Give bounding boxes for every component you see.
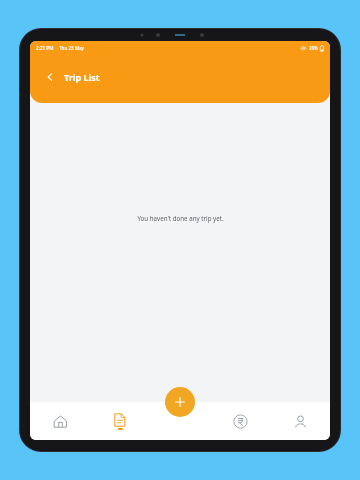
button[interactable]: Home bbox=[30, 402, 90, 440]
button[interactable]: Profile bbox=[270, 402, 330, 440]
staticText: Trip List bbox=[64, 71, 100, 83]
button[interactable]: Trips bbox=[90, 402, 150, 440]
staticText: You haven't done any trip yet. bbox=[137, 214, 224, 222]
staticText: 2:21 PM bbox=[36, 45, 54, 51]
staticText: 28% bbox=[309, 45, 318, 51]
button[interactable]: Back bbox=[40, 67, 60, 87]
button[interactable]: Add trip bbox=[165, 387, 195, 417]
staticText: Thu 23 May bbox=[59, 45, 84, 51]
button[interactable]: Payments bbox=[210, 402, 270, 440]
